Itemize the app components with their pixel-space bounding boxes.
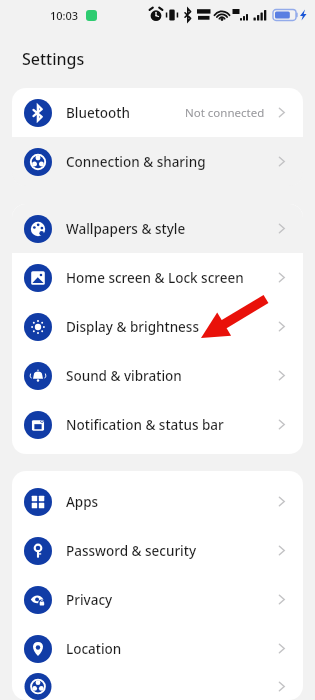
staticText: Wallpapers & style [66, 220, 186, 238]
button[interactable]: Display & brightness [12, 302, 303, 351]
button[interactable]: Notification & status bar [12, 400, 303, 449]
button[interactable]: Privacy [12, 575, 303, 624]
staticText: Display & brightness [66, 318, 199, 336]
staticText: Bluetooth [66, 104, 130, 122]
staticText: Settings [22, 48, 85, 70]
staticText: Home screen & Lock screen [66, 269, 244, 287]
button[interactable]: Sound & vibration [12, 351, 303, 400]
button[interactable]: Home screen & Lock screen [12, 253, 303, 302]
staticText: Location [66, 640, 122, 658]
button[interactable]: Location [12, 624, 303, 673]
staticText: 10:03 [50, 8, 79, 23]
staticText: Not connected [185, 105, 265, 121]
staticText: Password & security [66, 542, 197, 560]
staticText: Notification & status bar [66, 416, 224, 434]
button[interactable]: Bluetooth [12, 88, 303, 137]
button[interactable]: Password & security [12, 526, 303, 575]
button[interactable]: Connection & sharing [12, 137, 303, 186]
staticText: Connection & sharing [66, 153, 206, 171]
staticText: Sound & vibration [66, 367, 182, 385]
other: Annotation arrow [0, 0, 315, 700]
staticText: Apps [66, 493, 99, 511]
button[interactable] [12, 673, 303, 700]
staticText: Privacy [66, 591, 113, 609]
button[interactable]: Apps [12, 477, 303, 526]
button[interactable]: Wallpapers & style [12, 204, 303, 253]
